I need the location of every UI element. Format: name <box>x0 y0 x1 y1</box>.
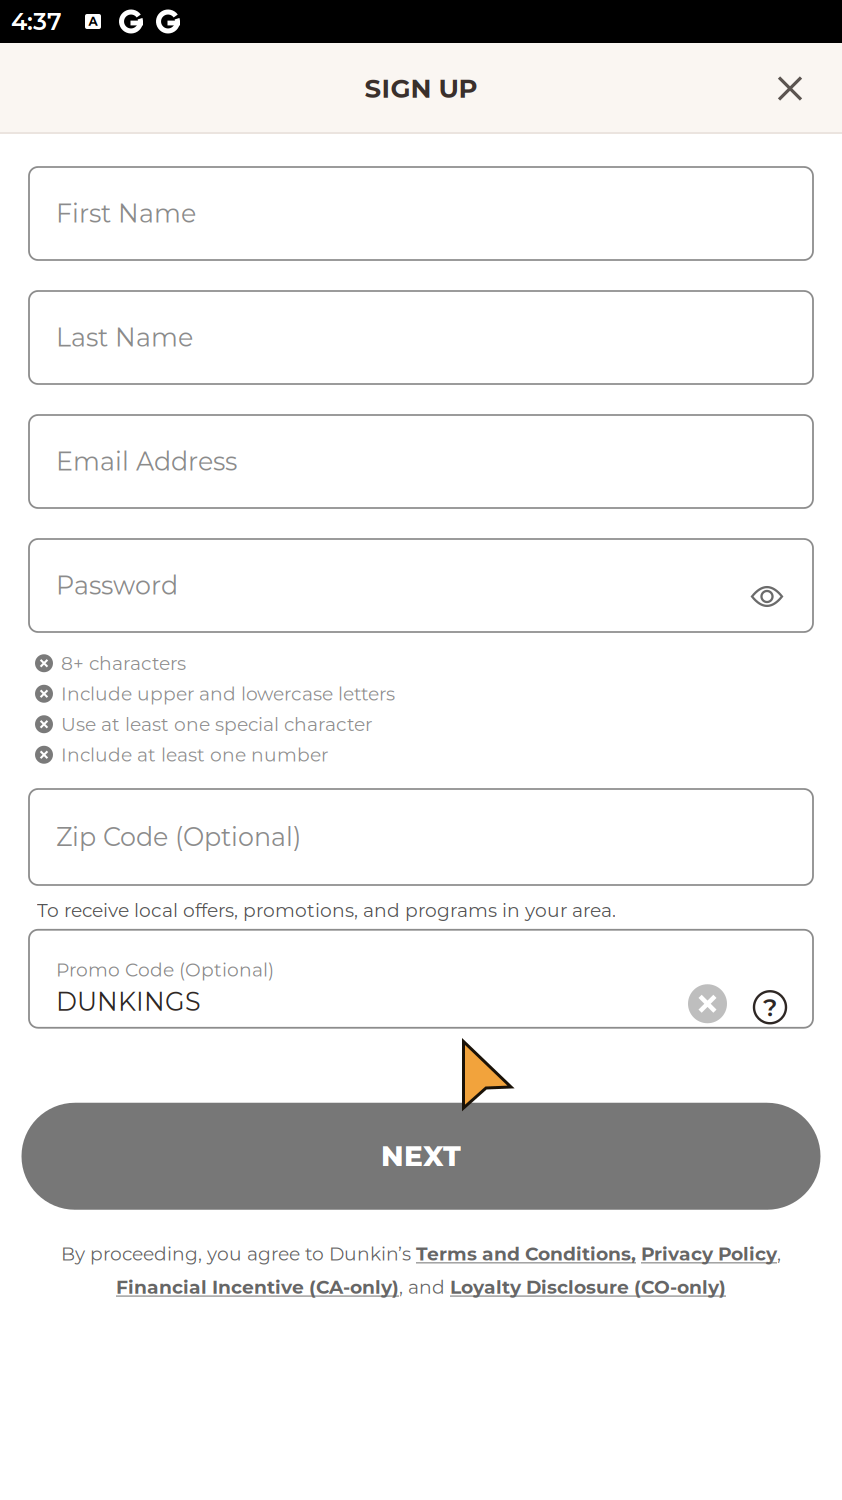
staticText: First Name <box>56 198 196 229</box>
staticText: Include upper and lowercase letters <box>61 682 395 705</box>
button[interactable]: Close <box>759 57 821 119</box>
staticText: A <box>88 14 97 29</box>
button[interactable]: Clear promo code <box>688 934 727 1023</box>
staticText: Include at least one number <box>61 743 328 766</box>
staticText: Email Address <box>56 446 237 477</box>
staticText: Promo Code (Optional) <box>56 958 274 981</box>
staticText: 4:37 <box>11 7 62 36</box>
staticText: Zip Code (Optional) <box>56 822 301 852</box>
staticText: SIGN UP <box>364 73 477 104</box>
staticText: Use at least one special character <box>61 713 372 736</box>
button[interactable]: NEXT <box>21 1103 820 1210</box>
staticText: Password <box>56 570 178 601</box>
staticText: NEXT <box>381 1139 461 1173</box>
button[interactable]: Promo code help <box>754 934 786 1023</box>
staticText: DUNKINGS <box>56 986 201 1017</box>
button[interactable]: Show password <box>748 552 786 618</box>
staticText: Financial Incentive (CA-only), and Loyal… <box>116 1276 726 1298</box>
staticText: Last Name <box>56 322 193 353</box>
staticText: 8+ characters <box>61 652 186 675</box>
staticText: ? <box>763 992 777 1022</box>
staticText: By proceeding, you agree to Dunkin’s Ter… <box>61 1243 781 1265</box>
staticText: To receive local offers, promotions, and… <box>37 899 616 922</box>
